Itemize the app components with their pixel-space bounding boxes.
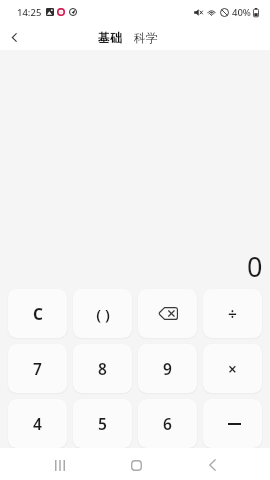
button[interactable]: C — [8, 289, 67, 338]
button[interactable]: 8 — [73, 344, 132, 393]
button[interactable]: Back — [2, 25, 27, 50]
staticText: 基础 — [98, 30, 122, 45]
staticText: 5 — [98, 413, 107, 434]
button[interactable]: ÷ — [203, 289, 262, 338]
button[interactable]: Minus — [203, 399, 262, 448]
staticText: 7 — [33, 358, 42, 379]
button[interactable]: 5 — [73, 399, 132, 448]
button[interactable]: × — [203, 344, 262, 393]
staticText: 40% — [232, 6, 251, 19]
button[interactable]: 6 — [138, 399, 197, 448]
staticText: C — [33, 303, 43, 324]
staticText: 0 — [247, 248, 263, 285]
staticText: ÷ — [228, 303, 237, 324]
button[interactable]: 4 — [8, 399, 67, 448]
staticText: ( ) — [96, 304, 110, 324]
staticText: 14:25 — [17, 6, 42, 19]
button[interactable]: ( ) — [73, 289, 132, 338]
staticText: 9 — [163, 358, 172, 379]
button[interactable]: Backspace — [138, 289, 197, 338]
staticText: 4 — [33, 413, 42, 434]
staticText: 科学 — [134, 30, 158, 45]
button[interactable]: Recents — [38, 449, 82, 480]
button[interactable]: Home — [114, 449, 158, 480]
button[interactable]: 7 — [8, 344, 67, 393]
button[interactable]: 9 — [138, 344, 197, 393]
staticText: × — [228, 358, 237, 379]
staticText: 8 — [98, 358, 107, 379]
button[interactable]: 科学 — [129, 27, 163, 48]
button[interactable]: 基础 — [93, 27, 127, 48]
staticText: 6 — [163, 413, 172, 434]
button[interactable]: Back — [190, 449, 234, 480]
